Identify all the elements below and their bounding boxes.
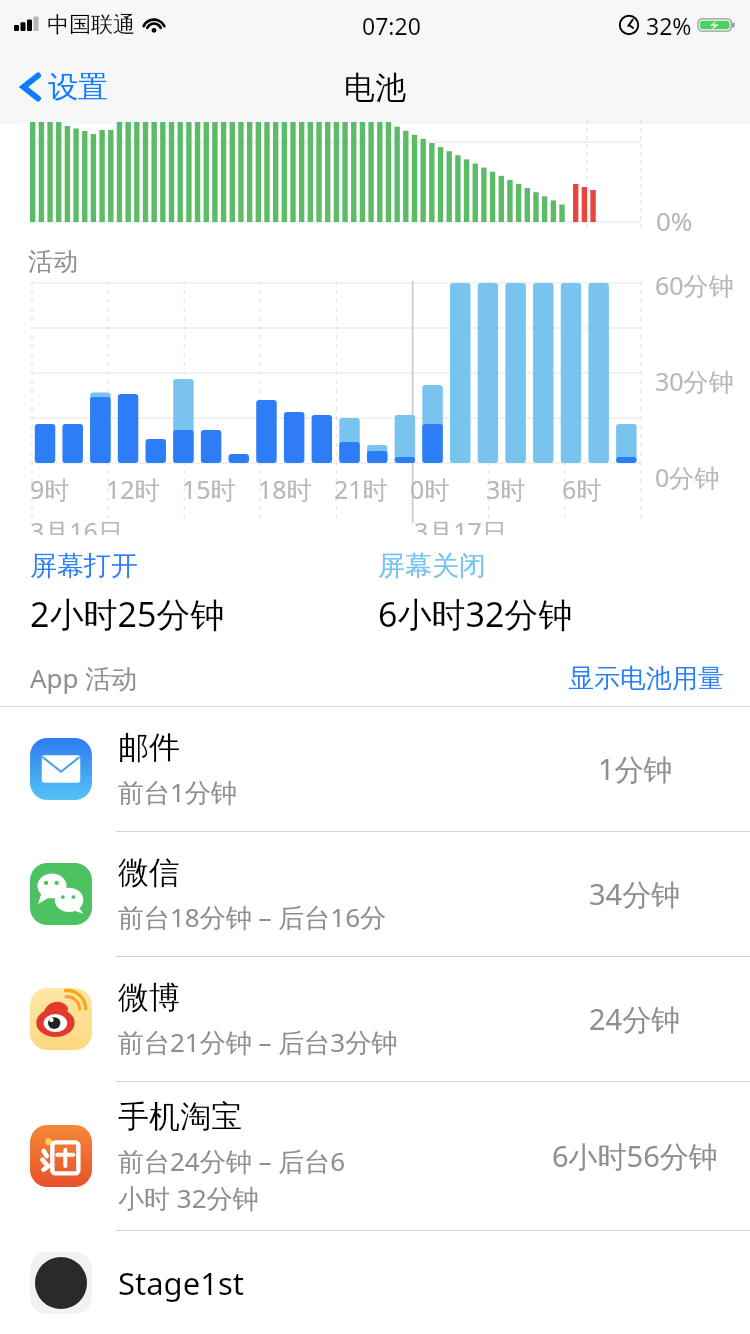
staticText: 0时	[410, 472, 450, 506]
staticText: 34分钟	[589, 874, 681, 914]
button[interactable]: 手机淘宝	[0, 1082, 750, 1230]
staticText: 6小时56分钟	[552, 1136, 718, 1176]
button[interactable]: 微博	[0, 957, 750, 1081]
staticText: App 活动	[30, 660, 138, 696]
staticText: 设置	[48, 68, 108, 106]
staticText: 前台1分钟	[118, 774, 237, 810]
staticText: 9时	[30, 472, 70, 506]
staticText: 显示电池用量	[568, 662, 724, 695]
staticText: 18时	[258, 472, 312, 506]
staticText: Stage1st	[118, 1262, 244, 1304]
staticText: 微信	[118, 853, 180, 892]
staticText: 微博	[118, 978, 180, 1017]
button[interactable]: 设置	[16, 62, 112, 112]
button[interactable]: 邮件	[0, 707, 750, 831]
staticText: 3月16日	[30, 514, 123, 535]
staticText: 07:20	[362, 10, 421, 41]
staticText: 手机淘宝	[118, 1097, 242, 1136]
button[interactable]: Stage1st	[0, 1231, 750, 1334]
staticText: 3月17日	[414, 514, 507, 535]
staticText: 前台18分钟 – 后台16分钟	[118, 899, 404, 935]
staticText: 前台24分钟 – 后台6小时 32分钟	[118, 1143, 349, 1216]
staticText: 15时	[182, 472, 236, 506]
staticText: 屏幕关闭	[378, 549, 486, 583]
staticText: 中国联通	[47, 11, 135, 39]
staticText: 1分钟	[598, 749, 673, 789]
staticText: 60分钟	[655, 268, 734, 302]
staticText: 屏幕打开	[30, 549, 138, 583]
staticText: 活动	[28, 246, 78, 277]
staticText: 电池	[344, 68, 406, 107]
staticText: 2小时25分钟	[30, 591, 225, 637]
staticText: 30分钟	[655, 364, 734, 398]
button[interactable]: 显示电池用量	[568, 662, 750, 695]
staticText: 24分钟	[589, 999, 681, 1039]
staticText: 32%	[646, 10, 692, 41]
staticText: 6小时32分钟	[378, 591, 573, 637]
staticText: 前台21分钟 – 后台3分钟	[118, 1024, 398, 1060]
staticText: 12时	[106, 472, 160, 506]
button[interactable]: 微信	[0, 832, 750, 956]
staticText: 21时	[334, 472, 388, 506]
staticText: 0%	[656, 203, 693, 238]
staticText: 邮件	[118, 728, 180, 767]
staticText: 6时	[562, 472, 602, 506]
staticText: 0分钟	[655, 460, 720, 494]
staticText: 3时	[486, 472, 526, 506]
